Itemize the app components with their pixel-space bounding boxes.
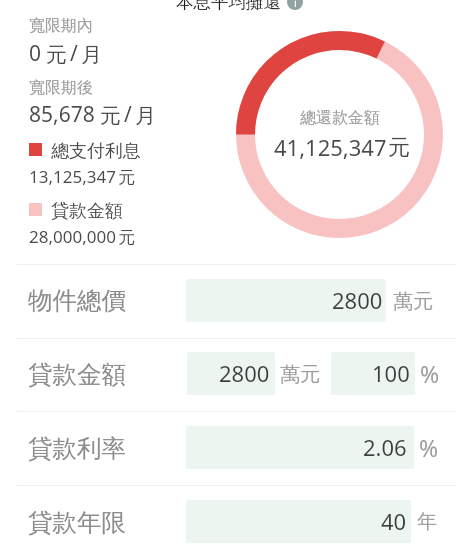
- staticText: 萬元: [393, 289, 433, 314]
- staticText: 月: [81, 42, 102, 68]
- other: Info: [287, 0, 303, 10]
- staticText: 貸款利率: [28, 433, 126, 464]
- staticText: 元: [118, 167, 135, 188]
- staticText: 13,125,347: [29, 165, 116, 188]
- staticText: 2800: [219, 358, 270, 388]
- staticText: 總還款金額: [300, 108, 380, 128]
- staticText: /: [124, 100, 132, 129]
- staticText: 40: [381, 506, 407, 536]
- button[interactable]: 40: [186, 500, 411, 543]
- staticText: 貸款金額: [28, 359, 126, 390]
- staticText: 總支付利息: [51, 140, 141, 163]
- staticText: 寬限期內: [29, 16, 93, 36]
- staticText: 41,125,347: [274, 132, 387, 162]
- button[interactable]: 2800: [187, 352, 275, 395]
- staticText: 月: [135, 103, 156, 129]
- staticText: 2.06: [363, 432, 407, 462]
- button[interactable]: 2.06: [186, 426, 414, 469]
- staticText: 寬限期後: [29, 78, 93, 98]
- staticText: 貸款金額: [51, 200, 123, 223]
- staticText: /: [70, 39, 78, 68]
- staticText: 物件總價: [28, 285, 126, 316]
- staticText: 本息平均攤還: [176, 0, 281, 13]
- staticText: 0: [29, 39, 42, 68]
- staticText: i: [294, 0, 297, 10]
- button[interactable]: 2800: [186, 279, 386, 322]
- staticText: 萬元: [280, 362, 320, 387]
- staticText: 年: [417, 509, 437, 534]
- button[interactable]: 本息平均攤還: [176, 0, 303, 13]
- staticText: 28,000,000: [29, 225, 116, 248]
- staticText: %: [420, 358, 440, 389]
- staticText: 貸款年限: [28, 507, 126, 538]
- staticText: 元: [388, 134, 410, 162]
- staticText: 2800: [332, 285, 383, 315]
- staticText: 元: [100, 103, 121, 129]
- staticText: 85,678: [29, 100, 95, 129]
- button[interactable]: 100: [331, 352, 415, 395]
- staticText: 元: [118, 227, 135, 248]
- staticText: %: [419, 432, 439, 463]
- staticText: 100: [372, 358, 410, 388]
- staticText: 元: [46, 42, 67, 68]
